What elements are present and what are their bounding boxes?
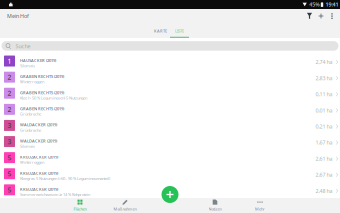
staticText: 19:41 bbox=[326, 1, 339, 8]
staticText: 2,61 ha bbox=[315, 155, 332, 162]
staticText: Notizen bbox=[208, 206, 221, 211]
staticText: 2,48 ha bbox=[315, 187, 332, 194]
staticText: KREUZACKER (2019) bbox=[20, 154, 58, 160]
staticText: 0,11 ha bbox=[315, 91, 332, 98]
button[interactable]: 2 bbox=[0, 69, 340, 85]
staticText: GRABEN RECHTS (2019) bbox=[20, 90, 64, 95]
staticText: 2,67 ha bbox=[315, 171, 332, 178]
staticText: Kleegras 5 Nutzungen (>60 - 90 % Legumin… bbox=[20, 176, 110, 181]
staticText: KREUZACKER (2019) bbox=[20, 170, 58, 176]
staticText: Sommerweichweizen ≥ 14 % Rohprotein bbox=[20, 192, 90, 197]
staticText: HAUSACKER (2019) bbox=[20, 58, 56, 63]
staticText: Flächen bbox=[73, 206, 86, 211]
staticText: 2 bbox=[7, 105, 11, 114]
staticText: 3 bbox=[7, 137, 11, 146]
staticText: KARTE bbox=[154, 28, 167, 33]
staticText: Klee (> 50 % Leguminosen) 5 Nutzungen bbox=[20, 95, 87, 100]
button[interactable]: LISTE bbox=[170, 23, 189, 38]
staticText: Maßnahmen bbox=[113, 206, 136, 211]
button[interactable]: Mehr bbox=[237, 198, 282, 213]
staticText: Grünbrache bbox=[20, 127, 41, 133]
staticText: Silomais bbox=[20, 144, 35, 149]
button[interactable]: Notizen bbox=[192, 198, 237, 213]
staticText: GRABEN RECHTS (2019) bbox=[20, 74, 64, 79]
button[interactable]: 5 bbox=[0, 150, 340, 166]
staticText: Silomais bbox=[20, 63, 35, 68]
staticText: 5 bbox=[7, 153, 11, 162]
staticText: 0,01 ha bbox=[315, 107, 332, 114]
staticText: Grünbrache bbox=[20, 111, 41, 117]
staticText: 5 bbox=[7, 169, 11, 178]
button[interactable]: Weitere Optionen bbox=[326, 9, 337, 23]
button[interactable]: Filter bbox=[303, 9, 315, 23]
button[interactable]: 2 bbox=[0, 101, 340, 117]
button[interactable]: 3 bbox=[0, 133, 340, 150]
button[interactable]: 1 bbox=[0, 53, 340, 69]
staticText: GRABEN RECHTS (2019) bbox=[20, 106, 64, 111]
button[interactable]: Neue Fläche bbox=[161, 186, 178, 203]
staticText: WALDACKER (2019) bbox=[20, 122, 57, 127]
button[interactable]: 3 bbox=[0, 117, 340, 133]
button[interactable]: KARTE bbox=[151, 23, 170, 38]
staticText: 3 bbox=[7, 121, 11, 130]
staticText: 5 bbox=[7, 185, 11, 194]
staticText: Winterroggen bbox=[20, 79, 44, 84]
staticText: 45% bbox=[309, 1, 319, 8]
staticText: 2 bbox=[7, 89, 11, 98]
staticText: 2,74 ha bbox=[315, 58, 332, 66]
staticText: Mein Hof bbox=[7, 12, 29, 20]
button[interactable]: 5 bbox=[0, 166, 340, 182]
button[interactable]: Flächen bbox=[57, 198, 102, 213]
staticText: LISTE bbox=[175, 28, 184, 33]
button[interactable]: 2 bbox=[0, 85, 340, 101]
staticText: WALDACKER (2019) bbox=[20, 138, 57, 143]
staticText: 0,21 ha bbox=[315, 123, 332, 130]
button[interactable]: 5 bbox=[0, 182, 340, 198]
staticText: Suche bbox=[15, 43, 30, 50]
staticText: 1 bbox=[7, 57, 11, 65]
button[interactable]: Maßnahmen bbox=[102, 198, 147, 213]
staticText: Mehr bbox=[255, 206, 265, 211]
staticText: 2 bbox=[7, 73, 11, 82]
staticText: 2,83 ha bbox=[315, 75, 332, 82]
staticText: Winterroggen bbox=[20, 160, 44, 165]
staticText: KREUZACKER (2019) bbox=[20, 186, 58, 192]
button[interactable]: Fläche hinzufügen bbox=[315, 9, 326, 23]
staticText: 1,67 ha bbox=[315, 139, 332, 146]
